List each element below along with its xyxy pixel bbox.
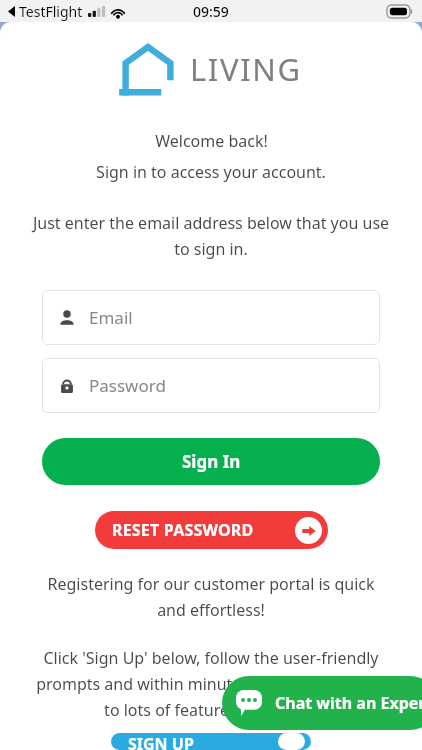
button[interactable]: SIGN UP [111, 733, 311, 750]
staticText: Registering for our customer portal is q… [38, 573, 384, 621]
staticText: Email [89, 306, 133, 329]
staticText: Just enter the email address below that … [30, 212, 392, 260]
button[interactable]: RESET PASSWORD [95, 511, 328, 549]
staticText: Welcome back! [155, 130, 268, 152]
staticText: TestFlight [19, 2, 83, 21]
staticText: SIGN UP [128, 733, 194, 750]
staticText: Password [89, 374, 166, 397]
button[interactable]: Chat with an Expert [222, 676, 422, 730]
staticText: RESET PASSWORD [112, 519, 254, 541]
staticText: Click 'Sign Up' below, follow the user-f… [32, 647, 390, 721]
staticText: Sign In [182, 450, 241, 473]
button[interactable]: Email [42, 290, 380, 345]
staticText: Chat with an Expert [275, 692, 422, 714]
button[interactable]: Password [42, 358, 380, 413]
staticText: LIVING [190, 48, 302, 90]
staticText: Sign in to access your account. [96, 161, 326, 183]
other: Password [59, 377, 75, 394]
button[interactable]: Sign In [42, 438, 380, 485]
other: Email [59, 309, 75, 326]
staticText: 09:59 [193, 2, 229, 21]
